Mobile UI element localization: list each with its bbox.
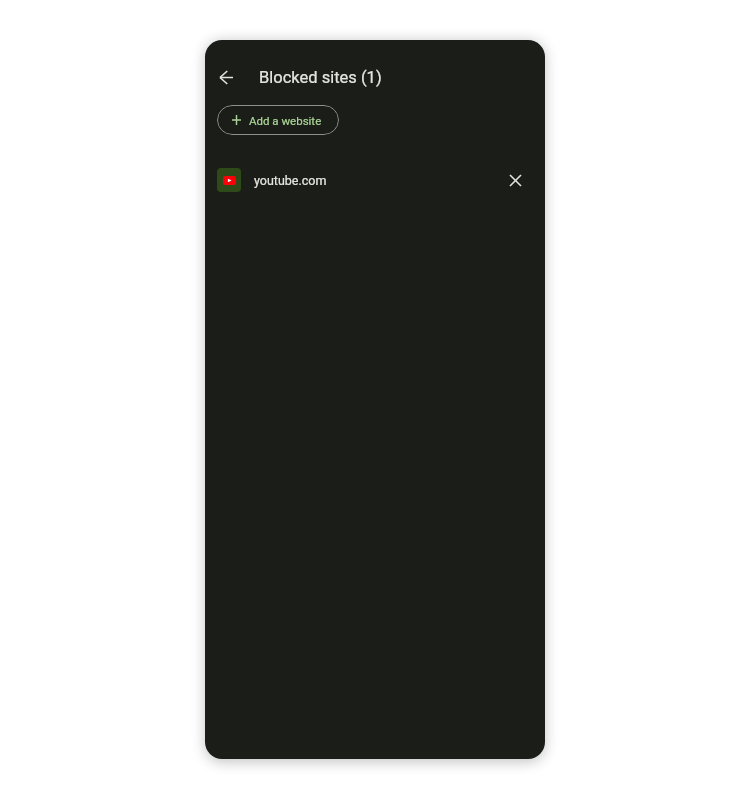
staticText: Add a website — [249, 114, 322, 127]
button[interactable]: Add a website — [217, 105, 339, 135]
button[interactable]: Remove — [498, 163, 532, 197]
button[interactable]: youtube.com — [205, 157, 545, 203]
staticText: youtube.com — [254, 173, 327, 188]
staticText: Blocked sites (1) — [259, 68, 382, 87]
button[interactable]: Back — [206, 57, 246, 97]
